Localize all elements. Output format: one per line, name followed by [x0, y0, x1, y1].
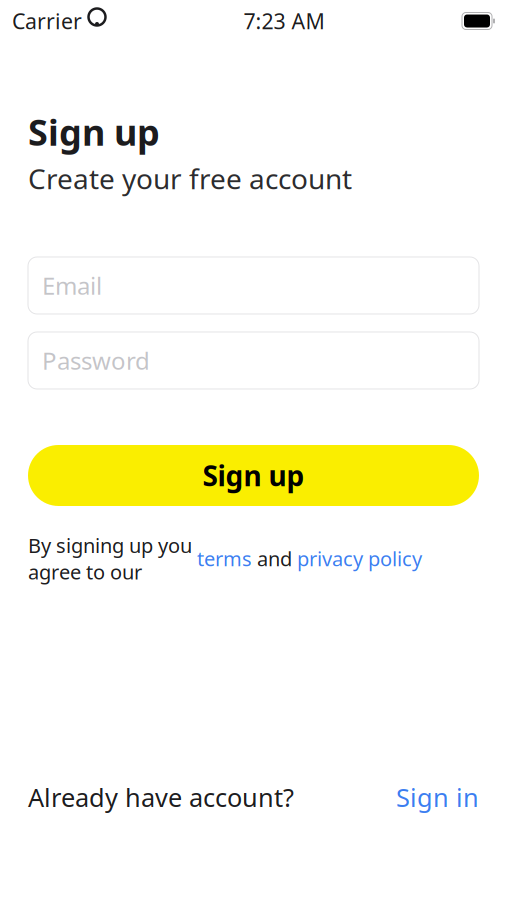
button[interactable]: Sign in: [396, 780, 479, 814]
staticText: 7:23 AM: [243, 7, 324, 35]
staticText: By signing up you agree to our: [28, 532, 192, 585]
staticText: privacy policy: [297, 545, 422, 572]
staticText: Sign in: [396, 780, 479, 814]
staticText: Sign up: [28, 108, 160, 156]
staticText: Password: [42, 345, 150, 376]
staticText: Carrier: [12, 7, 82, 35]
button[interactable]: privacy policy: [297, 545, 422, 572]
staticText: and: [252, 545, 297, 572]
staticText: terms: [192, 545, 252, 572]
staticText: Already have account?: [28, 780, 294, 814]
staticText: Email: [42, 270, 102, 301]
staticText: Create your free account: [28, 160, 352, 197]
button[interactable]: Sign up: [28, 445, 479, 506]
button[interactable]: terms: [192, 545, 252, 572]
staticText: Sign up: [202, 457, 304, 494]
